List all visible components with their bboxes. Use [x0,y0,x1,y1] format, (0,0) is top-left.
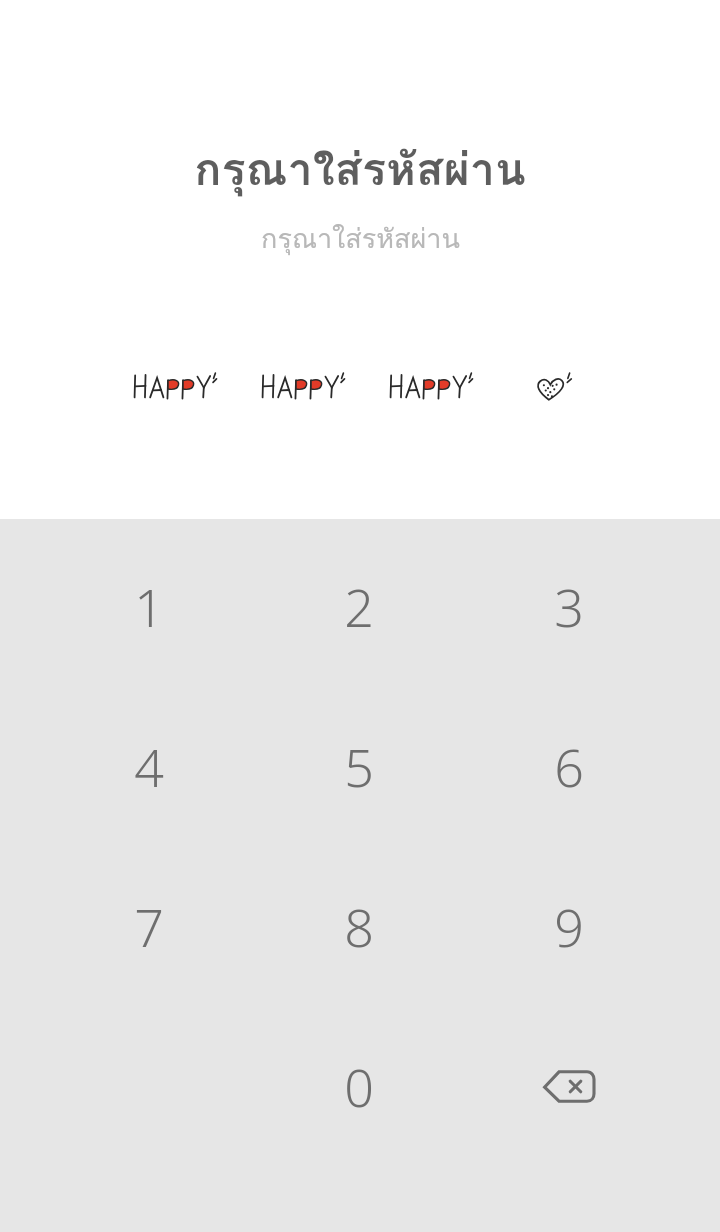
staticText: 3 [554,571,584,642]
button[interactable]: 4 [74,686,224,846]
button[interactable]: 0 [284,1006,434,1166]
staticText: กรุณาใส่รหัสผ่าน [261,217,460,260]
button[interactable]: 6 [494,686,644,846]
button[interactable]: 3 [494,526,644,686]
button[interactable]: 2 [284,526,434,686]
button[interactable]: 5 [284,686,434,846]
staticText: กรุณาใส่รหัสผ่าน [194,133,526,205]
staticText: 7 [134,891,164,962]
button[interactable]: 9 [494,846,644,1006]
staticText: 1 [134,571,164,642]
staticText: 8 [344,891,374,962]
button[interactable]: Backspace [494,1006,644,1166]
staticText: 4 [134,731,164,802]
staticText: 2 [344,571,374,642]
staticText: 5 [344,731,374,802]
button[interactable]: 8 [284,846,434,1006]
button[interactable]: 7 [74,846,224,1006]
staticText: 9 [554,891,584,962]
button[interactable]: 1 [74,526,224,686]
staticText: 0 [344,1051,374,1122]
staticText: 6 [554,731,584,802]
